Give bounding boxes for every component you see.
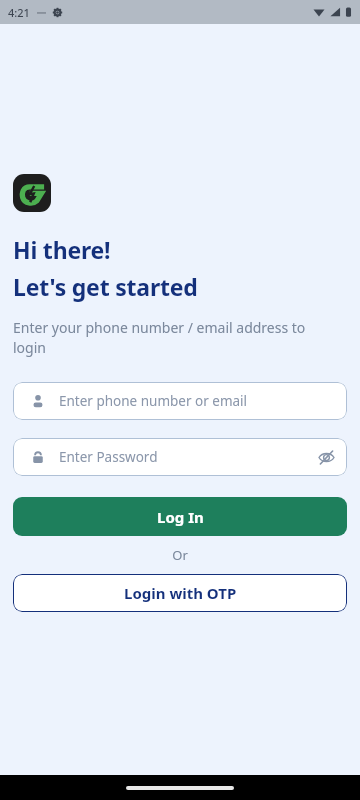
button[interactable]: Enter phone number or email bbox=[13, 382, 347, 420]
staticText: Enter Password bbox=[59, 448, 309, 466]
staticText: Let's get started bbox=[13, 271, 198, 302]
button[interactable]: Enter Password bbox=[13, 438, 347, 476]
other: App logo bbox=[13, 174, 51, 212]
button[interactable]: Login with OTP bbox=[13, 574, 347, 612]
staticText: Enter phone number or email bbox=[59, 392, 347, 410]
staticText: Or bbox=[172, 546, 188, 564]
staticText: Login with OTP bbox=[124, 583, 237, 603]
staticText: Log In bbox=[157, 507, 204, 527]
staticText: Enter your phone number / email address … bbox=[13, 318, 336, 358]
staticText: 4:21 bbox=[8, 5, 30, 20]
button[interactable]: Show password bbox=[309, 440, 343, 474]
button[interactable]: Log In bbox=[13, 497, 347, 536]
staticText: Hi there! bbox=[13, 234, 111, 265]
